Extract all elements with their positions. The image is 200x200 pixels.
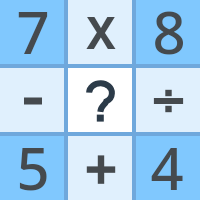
staticText: 8 [152,0,186,56]
button[interactable]: five [0,136,64,200]
staticText: 5 [16,128,50,192]
button[interactable]: four [136,136,200,200]
button[interactable]: eight [136,0,200,64]
staticText: X [86,2,116,62]
button[interactable]: seven [0,0,64,64]
button[interactable]: multiply [68,0,132,64]
button[interactable]: plus [68,136,132,200]
staticText: 7 [16,0,50,56]
button[interactable]: unknown value [68,68,132,132]
button[interactable]: minus [0,68,64,132]
button[interactable]: divide [136,68,200,132]
staticText: 4 [150,128,184,192]
